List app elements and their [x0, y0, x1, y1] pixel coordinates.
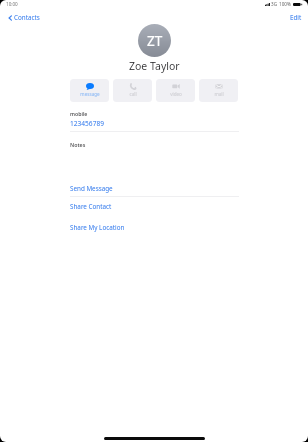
button[interactable]: Notes — [70, 140, 239, 149]
staticText: Notes — [70, 141, 86, 148]
staticText: 123456789 — [70, 119, 104, 128]
button[interactable]: mail — [199, 79, 238, 102]
button[interactable]: message — [70, 79, 109, 102]
staticText: Share My Location — [70, 223, 125, 232]
button[interactable]: Send Message — [70, 183, 239, 194]
staticText: ZT — [147, 32, 163, 50]
button[interactable]: Contact photo — [138, 24, 171, 57]
staticText: mail — [214, 91, 224, 97]
staticText: 10:00 — [6, 1, 18, 7]
staticText: message — [80, 91, 100, 97]
button[interactable]: Contacts — [4, 11, 46, 24]
button[interactable]: video — [156, 79, 195, 102]
staticText: Contacts — [14, 13, 40, 22]
staticText: call — [129, 91, 137, 97]
staticText: 3G — [271, 1, 277, 7]
staticText: mobile — [70, 110, 88, 117]
staticText: Edit — [290, 13, 302, 22]
button[interactable]: Share Contact — [70, 201, 239, 212]
button[interactable]: mobile — [70, 109, 239, 130]
staticText: Send Message — [70, 184, 113, 193]
button[interactable]: call — [113, 79, 152, 102]
button[interactable]: Share My Location — [70, 222, 239, 233]
staticText: Zoe Taylor — [129, 59, 180, 73]
button[interactable]: Edit — [284, 11, 308, 24]
staticText: 100% — [279, 1, 291, 7]
staticText: video — [170, 91, 182, 97]
staticText: Share Contact — [70, 202, 112, 211]
